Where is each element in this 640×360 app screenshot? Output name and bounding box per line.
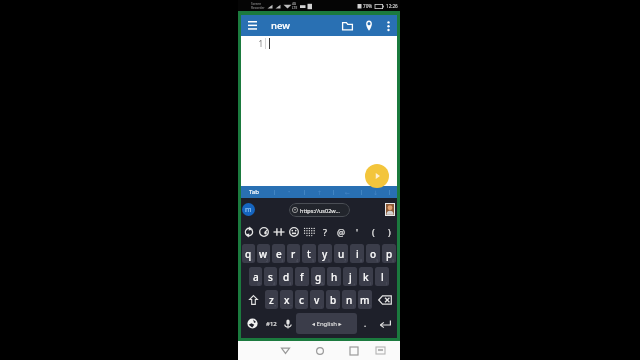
button[interactable]: y xyxy=(318,244,332,263)
button[interactable]: u xyxy=(334,244,348,263)
button[interactable]: d xyxy=(279,267,293,286)
staticText: 7 xyxy=(344,258,347,263)
button[interactable]: ( xyxy=(365,221,381,242)
button[interactable]: | xyxy=(383,186,397,198)
button[interactable]: n xyxy=(342,290,356,309)
button[interactable]: Voice input xyxy=(280,313,296,334)
staticText: ( xyxy=(370,281,372,286)
button[interactable]: v xyxy=(310,290,324,309)
staticText: u xyxy=(338,247,345,261)
button[interactable]: | xyxy=(355,186,369,198)
button[interactable]: . xyxy=(357,313,373,334)
button[interactable]: Back xyxy=(274,341,296,360)
button[interactable]: k xyxy=(359,267,373,286)
button[interactable]: i xyxy=(350,244,364,263)
button[interactable]: https://us02w… xyxy=(289,203,350,217)
button[interactable]: m xyxy=(358,290,372,309)
staticText: ( xyxy=(372,226,375,238)
button[interactable]: o xyxy=(366,244,380,263)
button[interactable]: e xyxy=(272,244,285,263)
button[interactable]: c xyxy=(295,290,308,309)
button[interactable]: b xyxy=(326,290,340,309)
button[interactable]: Location xyxy=(358,15,379,36)
button[interactable]: Recent apps xyxy=(343,341,365,360)
staticText: 8 xyxy=(360,258,363,263)
staticText: f xyxy=(300,270,304,284)
button[interactable]: Tab xyxy=(241,186,267,198)
button[interactable]: Backspace xyxy=(373,290,396,309)
button[interactable]: More options xyxy=(379,17,397,35)
staticText: Recorder xyxy=(251,6,265,10)
button[interactable]: a xyxy=(249,267,262,286)
button[interactable]: ' xyxy=(349,221,365,242)
button[interactable]: Tool xyxy=(271,221,286,242)
staticText: ↓ xyxy=(373,189,379,196)
staticText: e xyxy=(276,247,282,261)
button[interactable]: l xyxy=(375,267,389,286)
button[interactable]: g xyxy=(311,267,325,286)
staticText: r xyxy=(291,247,296,261)
button[interactable]: s xyxy=(264,267,277,286)
button[interactable]: @ xyxy=(333,221,349,242)
button[interactable]: ? xyxy=(317,221,333,242)
button[interactable]: | xyxy=(267,186,282,198)
button[interactable]: ◂ English ▸ xyxy=(296,313,357,334)
button[interactable]: Run xyxy=(365,164,389,188)
button[interactable]: | xyxy=(297,186,312,198)
button[interactable]: r xyxy=(287,244,300,263)
staticText: ' xyxy=(356,226,359,238)
staticText: . xyxy=(364,318,367,329)
staticText: 4G xyxy=(292,2,297,6)
button[interactable]: Profile xyxy=(386,204,394,215)
staticText: a xyxy=(253,270,259,284)
button[interactable]: ↓ xyxy=(369,186,383,198)
button[interactable]: Assistant xyxy=(242,203,255,216)
button[interactable]: | xyxy=(327,186,341,198)
staticText: # xyxy=(273,281,276,286)
staticText: 4 xyxy=(296,258,299,263)
staticText: 5 xyxy=(312,258,315,263)
button[interactable]: Enter xyxy=(373,313,396,334)
staticText: 2 xyxy=(266,258,269,263)
button[interactable]: q xyxy=(242,244,255,263)
staticText: #12 xyxy=(266,320,277,328)
button[interactable]: Open folder xyxy=(337,15,358,36)
staticText: n xyxy=(346,293,353,307)
button[interactable]: Change language xyxy=(242,313,263,334)
button[interactable]: j xyxy=(343,267,357,286)
staticText: 3 xyxy=(281,258,284,263)
button[interactable]: w xyxy=(257,244,270,263)
button[interactable]: h xyxy=(327,267,341,286)
staticText: ! xyxy=(353,304,355,309)
staticText: | xyxy=(303,188,307,196)
button[interactable]: Tool xyxy=(256,221,271,242)
staticText: 1 xyxy=(241,38,263,49)
button[interactable]: Navigation menu xyxy=(241,15,263,36)
staticText: * xyxy=(274,304,277,309)
button[interactable]: t xyxy=(302,244,316,263)
button[interactable]: f xyxy=(295,267,309,286)
button[interactable]: #12 xyxy=(263,313,280,334)
button[interactable]: Shift xyxy=(242,290,264,309)
button[interactable]: Tool xyxy=(241,221,256,242)
staticText: & xyxy=(321,281,324,286)
staticText: c xyxy=(299,293,304,307)
button[interactable]: Tool xyxy=(286,221,301,242)
staticText: ? xyxy=(369,304,371,309)
staticText: https://us02w… xyxy=(300,207,340,214)
staticText: k xyxy=(363,270,369,284)
staticText: ) xyxy=(388,226,391,238)
button[interactable]: Hide keyboard xyxy=(369,341,391,360)
button[interactable]: ) xyxy=(381,221,397,242)
button[interactable]: Home xyxy=(309,341,331,360)
button[interactable]: z xyxy=(265,290,278,309)
staticText: y xyxy=(322,247,328,261)
staticText: @ xyxy=(257,281,261,286)
button[interactable]: x xyxy=(280,290,293,309)
button[interactable]: Tool xyxy=(301,221,317,242)
button[interactable]: p xyxy=(382,244,396,263)
staticText: m xyxy=(245,205,252,215)
